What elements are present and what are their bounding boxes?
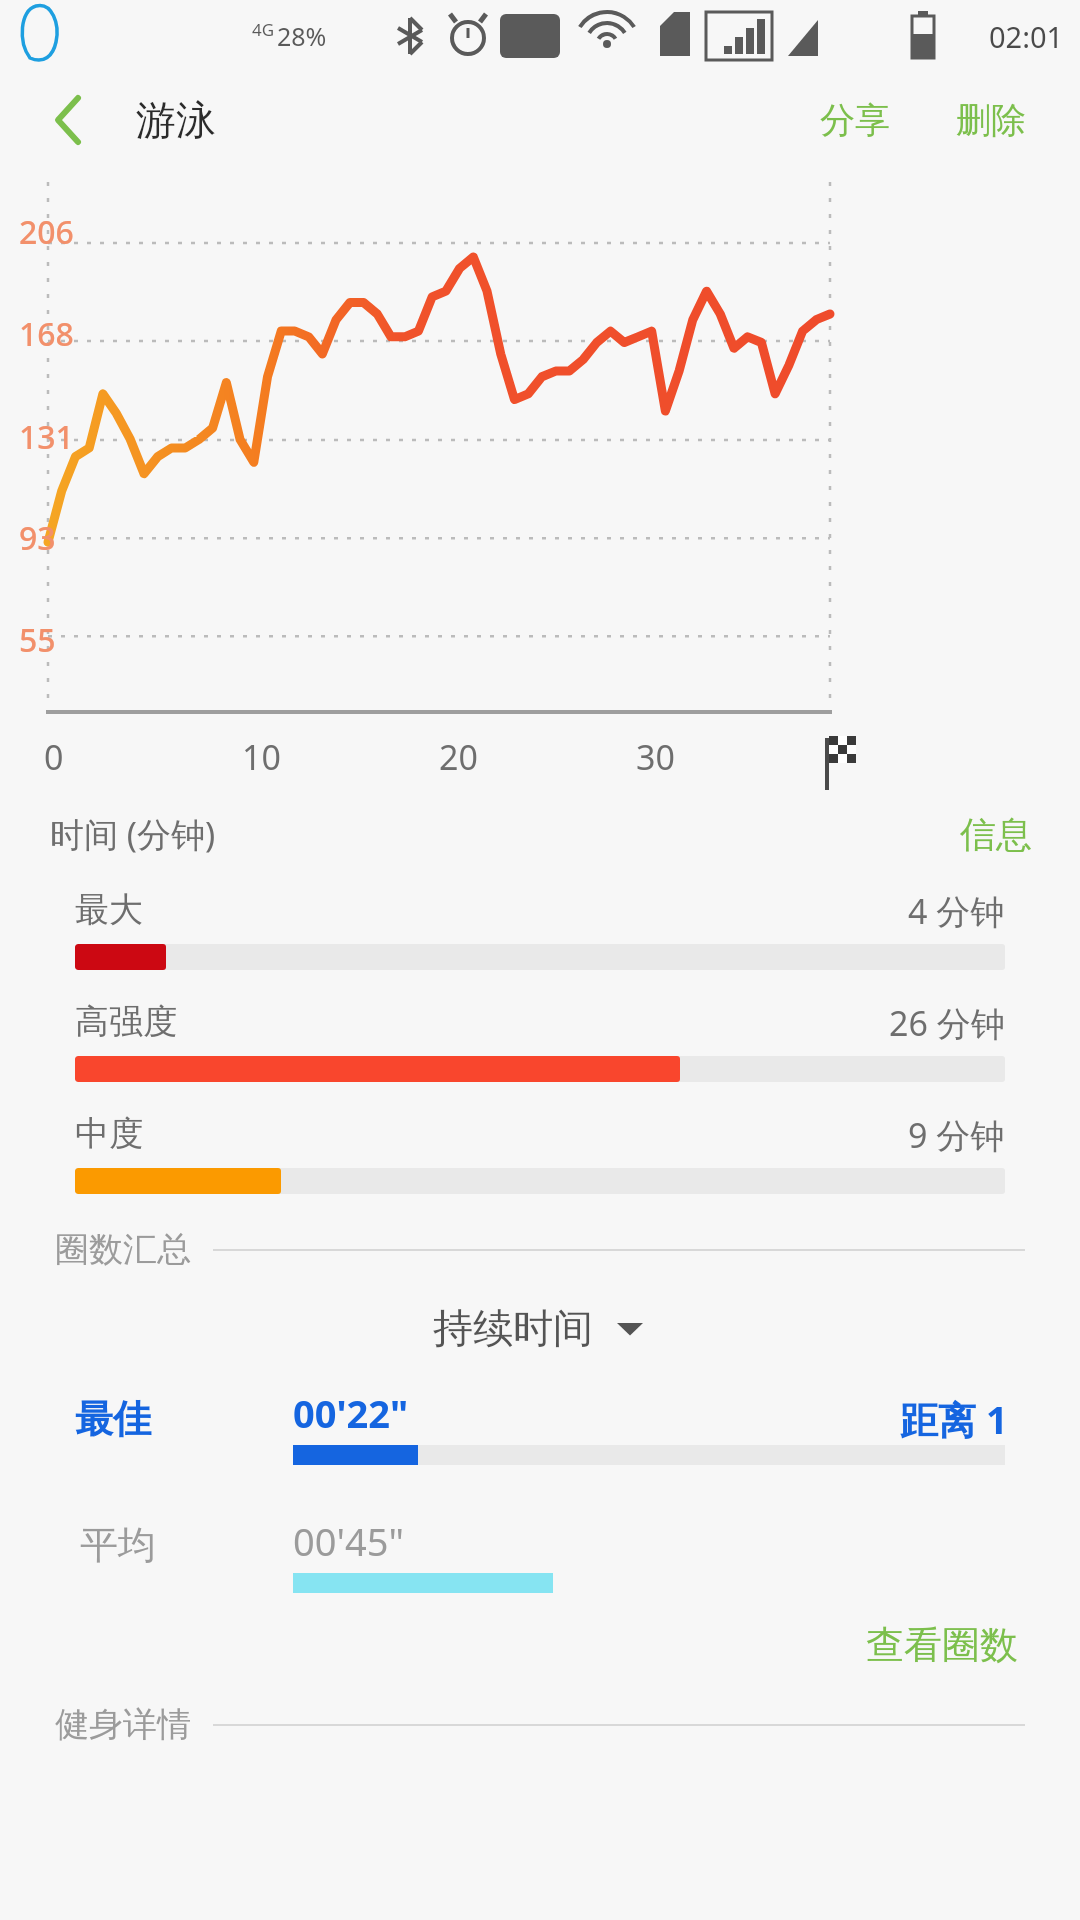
- staticText: 高强度: [75, 1000, 177, 1043]
- staticText: 30: [636, 734, 675, 780]
- button[interactable]: 平均: [0, 1485, 1080, 1593]
- button[interactable]: 最佳: [0, 1387, 1080, 1465]
- staticText: 00'22": [293, 1387, 409, 1439]
- staticText: 206: [19, 210, 74, 254]
- staticText: 距离 1: [900, 1393, 1008, 1445]
- staticText: 0: [44, 734, 64, 780]
- staticText: 26 分钟: [889, 1000, 1005, 1046]
- staticText: 02:01: [989, 17, 1064, 56]
- button[interactable]: 查看圈数: [852, 1609, 1032, 1681]
- staticText: 最佳: [75, 1395, 151, 1443]
- staticText: 9 分钟: [908, 1112, 1005, 1158]
- staticText: 健身详情: [55, 1703, 191, 1746]
- button[interactable]: 高强度: [0, 1000, 1080, 1082]
- staticText: 93: [19, 516, 56, 560]
- staticText: 持续时间: [433, 1303, 593, 1353]
- staticText: 中度: [75, 1112, 143, 1155]
- staticText: 55: [19, 618, 56, 662]
- button[interactable]: 信息: [948, 804, 1044, 865]
- staticText: 4 分钟: [908, 888, 1005, 934]
- staticText: 圈数汇总: [55, 1228, 191, 1271]
- button[interactable]: Back: [40, 92, 96, 148]
- staticText: 时间 (分钟): [50, 811, 216, 857]
- staticText: 28%: [277, 19, 327, 53]
- button[interactable]: 持续时间: [413, 1293, 667, 1363]
- staticText: 最大: [75, 888, 143, 931]
- staticText: 131: [19, 415, 74, 459]
- staticText: 分享: [820, 98, 890, 142]
- staticText: 删除: [956, 98, 1026, 142]
- staticText: 信息: [960, 812, 1032, 857]
- staticText: 游泳: [136, 95, 216, 145]
- staticText: 00'45": [293, 1515, 404, 1567]
- staticText: 平均: [80, 1521, 156, 1569]
- staticText: 168: [19, 312, 74, 356]
- button[interactable]: 分享: [806, 88, 904, 152]
- staticText: 4G: [252, 18, 275, 41]
- staticText: 10: [242, 734, 281, 780]
- staticText: 20: [439, 734, 478, 780]
- button[interactable]: 删除: [942, 88, 1040, 152]
- staticText: 查看圈数: [866, 1621, 1018, 1669]
- button[interactable]: 最大: [0, 888, 1080, 970]
- button[interactable]: 中度: [0, 1112, 1080, 1194]
